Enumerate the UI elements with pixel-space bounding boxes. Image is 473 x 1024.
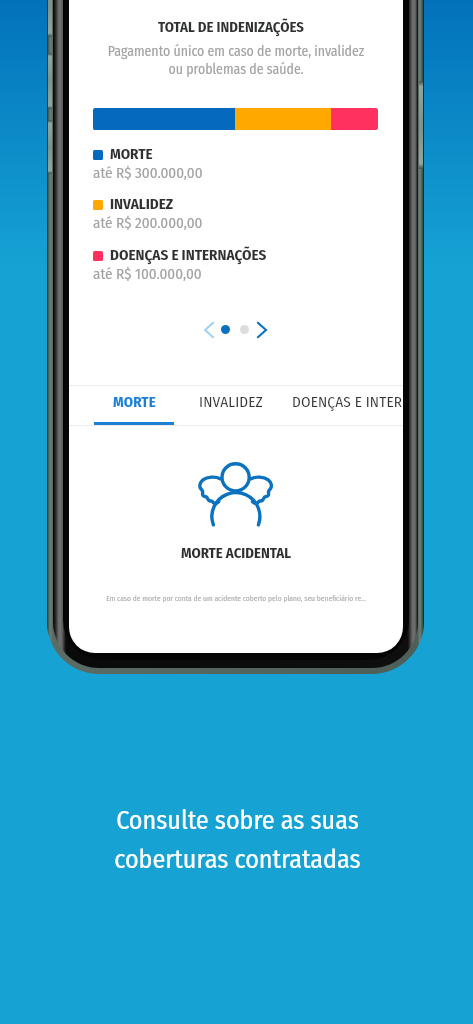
- button[interactable]: MORTE: [94, 385, 175, 419]
- staticText: Pagamento único em caso de morte, invali…: [69, 43, 403, 78]
- button[interactable]: Anterior: [194, 319, 216, 341]
- button[interactable]: INVALIDEZ: [199, 385, 287, 419]
- staticText: TOTAL DE INDENIZAÇÕES: [69, 18, 398, 36]
- staticText: até R$ 300.000,00: [93, 164, 203, 182]
- staticText: Em caso de morte por conta de um acident…: [69, 594, 403, 603]
- button[interactable]: Próximo: [255, 319, 277, 341]
- staticText: INVALIDEZ: [199, 393, 263, 411]
- staticText: MORTE: [110, 145, 153, 163]
- staticText: DOENÇAS E INTERNAÇÕES: [110, 246, 267, 264]
- staticText: MORTE: [113, 393, 156, 411]
- button[interactable]: DOENÇAS E INTERNAÇÕES: [292, 385, 403, 419]
- staticText: INVALIDEZ: [110, 195, 174, 213]
- staticText: DOENÇAS E INTERNAÇÕES: [292, 393, 403, 411]
- staticText: até R$ 100.000,00: [93, 265, 202, 283]
- staticText: até R$ 200.000,00: [93, 214, 203, 232]
- staticText: MORTE ACIDENTAL: [69, 544, 403, 562]
- staticText: Consulte sobre as suas coberturas contra…: [1, 805, 473, 875]
